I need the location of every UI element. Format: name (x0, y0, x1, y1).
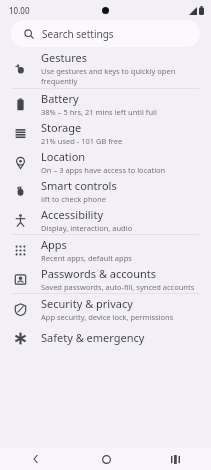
staticText: Smart controls (41, 178, 117, 193)
staticText: 10.00 (9, 5, 30, 16)
button[interactable]: Safety & emergency (0, 323, 211, 352)
staticText: Accessibility (41, 207, 104, 222)
staticText: Battery (41, 91, 79, 106)
staticText: Recent apps, default apps (41, 253, 132, 263)
button[interactable]: Back (26, 449, 46, 469)
button[interactable]: Storage (0, 118, 211, 147)
staticText: App security, device lock, permissions (41, 312, 174, 322)
button[interactable]: Gestures (0, 50, 211, 88)
button[interactable]: Recent apps (165, 449, 185, 469)
button[interactable]: Search settings (11, 20, 200, 47)
staticText: Use gestures and keys to quickly open fr… (41, 66, 201, 88)
staticText: 38% – 5 hrs, 21 mins left until full (41, 107, 157, 117)
staticText: Safety & emergency (41, 330, 145, 345)
staticText: Storage (41, 120, 82, 135)
staticText: 21% used - 101 GB free (41, 136, 123, 146)
button[interactable]: Passwords & accounts (0, 264, 211, 293)
staticText: Passwords & accounts (41, 266, 157, 281)
button[interactable]: Security & privacy (0, 294, 211, 323)
button[interactable]: Smart controls (0, 176, 211, 205)
button[interactable]: Accessibility (0, 205, 211, 234)
staticText: Gestures (41, 50, 88, 65)
staticText: Saved passwords, auto-fill, synced accou… (41, 282, 195, 292)
button[interactable]: Battery (0, 89, 211, 118)
staticText: Search settings (42, 27, 114, 41)
button[interactable]: Home (96, 449, 116, 469)
staticText: lift to check phone (41, 194, 106, 204)
staticText: Location (41, 149, 86, 164)
button[interactable]: Location (0, 147, 211, 176)
button[interactable]: Apps (0, 235, 211, 264)
staticText: On – 3 apps have access to location (41, 165, 166, 175)
staticText: Apps (41, 237, 67, 252)
staticText: Display, interaction, audio (41, 223, 133, 233)
staticText: Security & privacy (41, 296, 133, 311)
